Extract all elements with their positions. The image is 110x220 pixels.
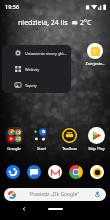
button[interactable]: Camera <box>89 164 105 180</box>
button[interactable]: Gmail <box>47 164 63 180</box>
button[interactable]: Messages <box>26 164 42 180</box>
button[interactable]: Tapety <box>2 77 71 93</box>
button[interactable]: Back <box>19 204 28 213</box>
staticText: Ustawienia strony głó... <box>25 51 67 56</box>
staticText: Tapety <box>25 83 37 88</box>
button[interactable]: Start <box>28 127 54 151</box>
staticText: Start <box>37 146 46 151</box>
button[interactable]: Phone <box>5 164 21 180</box>
button[interactable]: Zarejestr... <box>82 43 108 66</box>
button[interactable]: Chrome <box>68 164 84 180</box>
button[interactable]: Skip Play <box>83 127 109 151</box>
button[interactable]: Widżety <box>2 61 71 77</box>
staticText: Widżety <box>25 67 40 72</box>
staticText: 2°C <box>80 18 92 28</box>
staticText: Google <box>7 146 21 151</box>
staticText: 19:56 <box>5 3 20 10</box>
staticText: Powiedz „Ok Google” <box>30 191 80 198</box>
button[interactable]: Google <box>1 127 27 151</box>
button[interactable]: Ustawienia strony głó... <box>2 45 71 61</box>
staticText: Skip Play <box>88 146 105 151</box>
staticText: Zarejestr... <box>85 61 105 66</box>
staticText: Toolbox <box>62 146 77 151</box>
button[interactable]: Toolbox <box>56 127 82 151</box>
staticText: niedziela, 24 lis <box>18 18 68 28</box>
button[interactable]: Powiedz „Ok Google” <box>4 188 106 201</box>
